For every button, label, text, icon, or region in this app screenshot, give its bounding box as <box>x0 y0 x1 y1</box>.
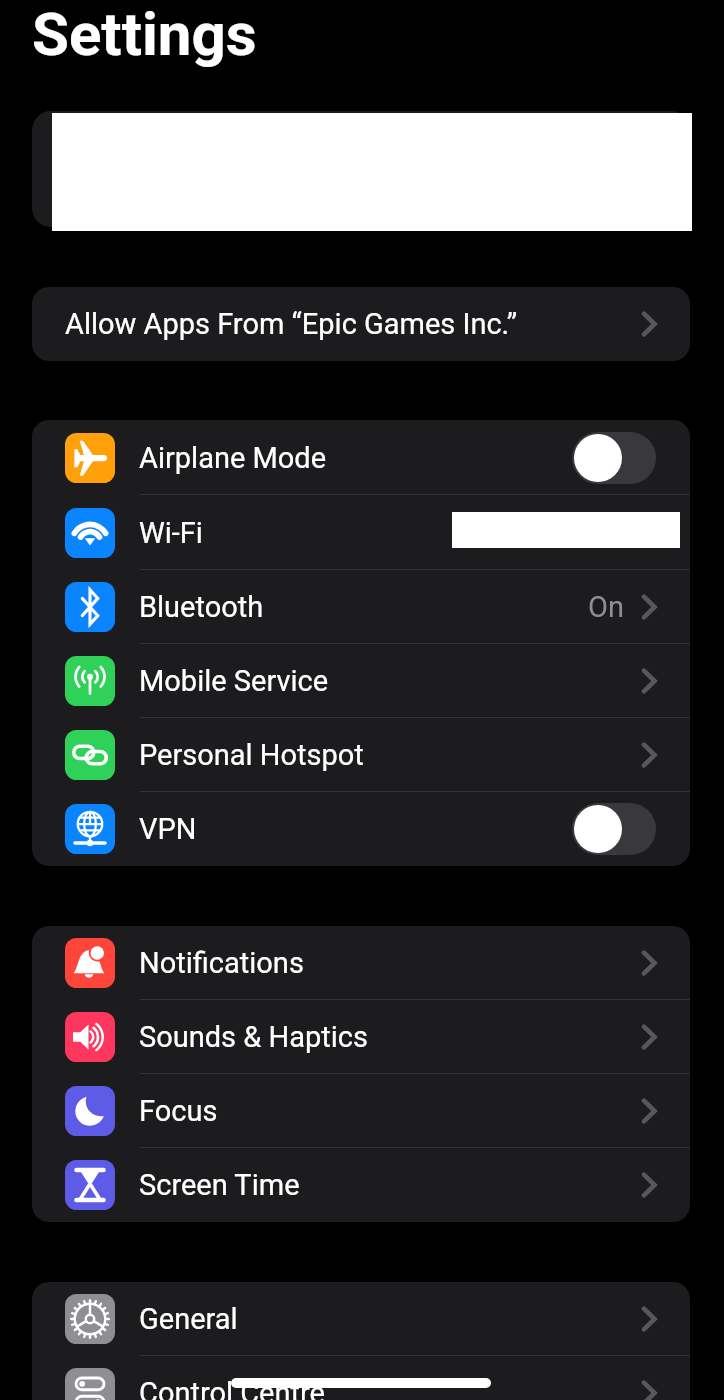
staticText: VPN <box>139 812 197 846</box>
button[interactable]: Control Centre <box>32 1356 690 1400</box>
button[interactable]: Sounds & Haptics <box>32 1000 690 1074</box>
staticText: Sounds & Haptics <box>139 1020 368 1054</box>
button[interactable]: Allow Apps From “Epic Games Inc.” <box>32 287 690 361</box>
button[interactable]: Toggle switch, off <box>572 803 656 855</box>
button[interactable]: Toggle switch, off <box>572 432 656 484</box>
staticText: Bluetooth <box>139 590 264 624</box>
button[interactable]: Personal Hotspot <box>32 718 690 792</box>
button[interactable]: VPN <box>32 792 690 866</box>
staticText: Wi‑Fi <box>139 516 203 550</box>
button[interactable]: Notifications <box>32 926 690 1000</box>
button[interactable]: Wi‑Fi <box>32 495 690 570</box>
staticText: Screen Time <box>139 1168 300 1202</box>
button[interactable]: Apple Account <box>32 111 690 227</box>
staticText: Control Centre <box>139 1376 325 1400</box>
staticText: Mobile Service <box>139 664 329 698</box>
staticText: General <box>139 1302 238 1336</box>
staticText: On <box>588 590 624 624</box>
staticText: Focus <box>139 1094 218 1128</box>
button[interactable]: Focus <box>32 1074 690 1148</box>
button[interactable]: Airplane Mode <box>32 420 690 495</box>
button[interactable]: Mobile Service <box>32 644 690 718</box>
staticText: Personal Hotspot <box>139 738 364 772</box>
button[interactable]: Bluetooth <box>32 570 690 644</box>
staticText: Allow Apps From “Epic Games Inc.” <box>65 307 518 341</box>
button[interactable]: Screen Time <box>32 1148 690 1222</box>
staticText: Settings <box>32 0 257 69</box>
staticText: Notifications <box>139 946 304 980</box>
staticText: Airplane Mode <box>139 441 327 475</box>
button[interactable]: General <box>32 1282 690 1356</box>
